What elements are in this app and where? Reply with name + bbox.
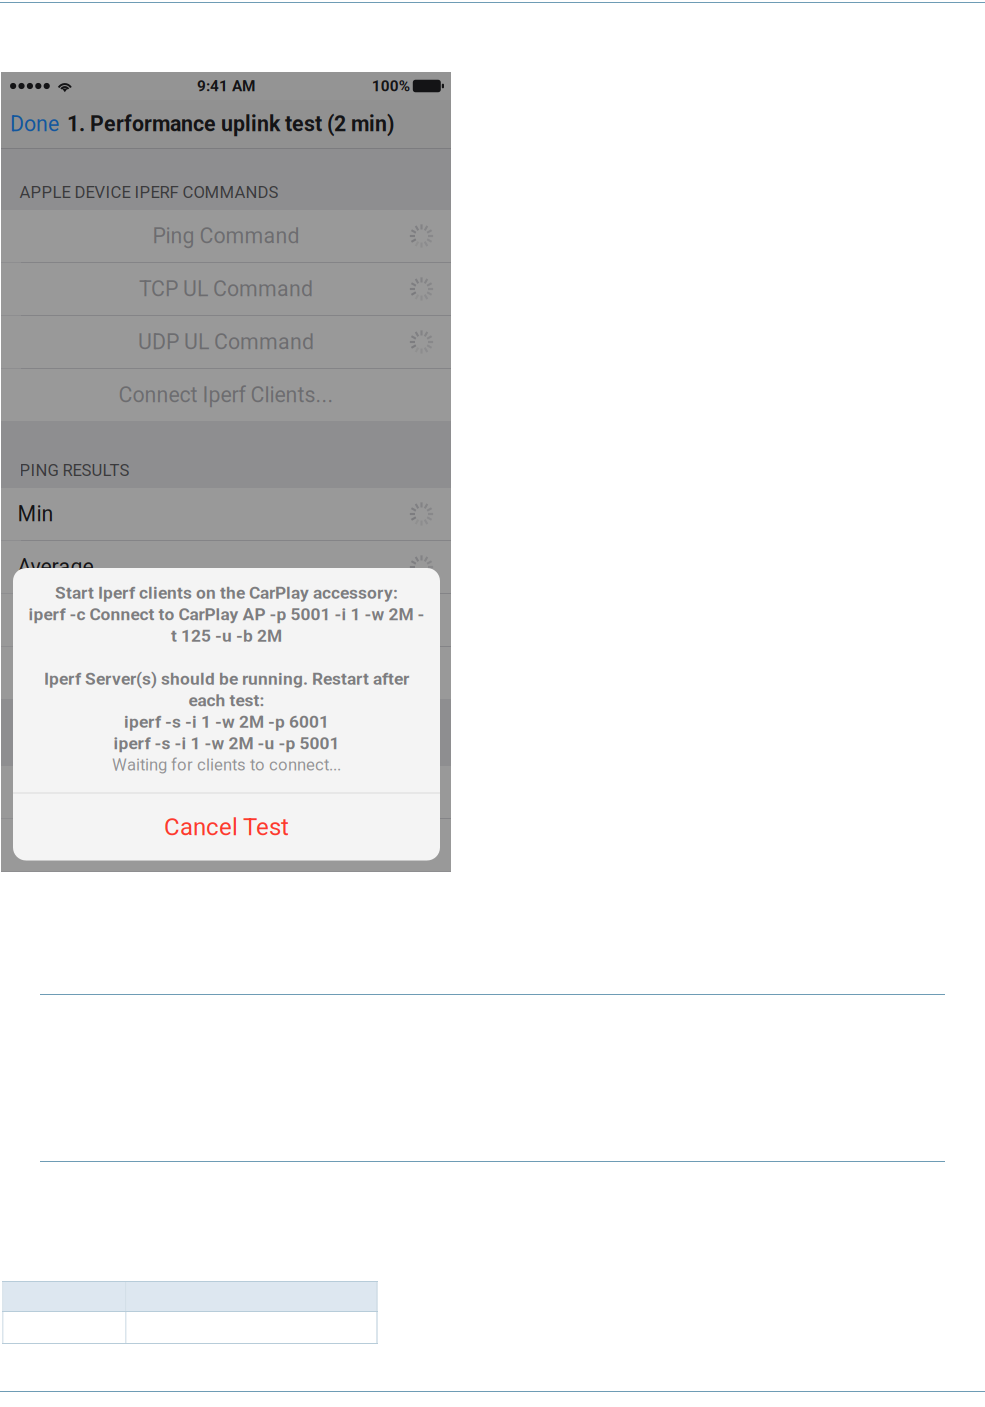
staticText: iperf -c Connect to CarPlay AP -p 5001 -… <box>28 604 424 624</box>
staticText: iperf -s -i 1 -w 2M -p 6001 <box>124 712 329 732</box>
staticText: each test: <box>188 690 264 710</box>
staticText: Max <box>17 607 59 632</box>
button[interactable]: Min <box>1 488 451 540</box>
staticText: TCP UL <box>17 779 86 804</box>
staticText: 9:41 AM <box>197 77 255 95</box>
button[interactable]: Cancel Test <box>13 793 440 860</box>
button[interactable]: Average <box>1 541 451 593</box>
staticText: 1. Performance uplink test (2 min) <box>67 111 394 136</box>
staticText: Done <box>10 111 59 136</box>
staticText: Min <box>17 501 53 526</box>
staticText: UDP UL Command <box>138 329 314 354</box>
button[interactable]: Max <box>1 594 451 646</box>
button[interactable]: Loss <box>1 647 451 699</box>
button[interactable]: Ping Command <box>1 210 451 262</box>
button[interactable]: TCP UL <box>1 766 451 818</box>
staticText: Iperf Server(s) should be running. Resta… <box>44 669 409 689</box>
staticText: Connect Iperf Clients... <box>118 382 333 407</box>
staticText: APPLE DEVICE IPERF COMMANDS <box>19 182 278 202</box>
staticText: TCP UL Command <box>139 276 313 301</box>
staticText: Waiting for clients to connect... <box>112 755 341 774</box>
staticText: Cancel Test <box>164 813 289 841</box>
staticText: Loss <box>17 660 62 685</box>
staticText: Ping Command <box>152 223 299 248</box>
button[interactable]: Done <box>1 99 67 148</box>
staticText: Average <box>17 554 93 579</box>
button[interactable]: UDP UL <box>1 819 451 871</box>
button[interactable]: Connect Iperf Clients... <box>1 369 451 421</box>
staticText: 100% <box>372 77 410 95</box>
staticText: iperf -s -i 1 -w 2M -u -p 5001 <box>113 733 339 753</box>
staticText: t 125 -u -b 2M <box>171 626 282 646</box>
staticText: THROUGHPUT RESULTS <box>19 738 199 758</box>
staticText: PING RESULTS <box>19 460 129 480</box>
button[interactable]: TCP UL Command <box>1 263 451 315</box>
staticText: Start Iperf clients on the CarPlay acces… <box>55 583 398 603</box>
button[interactable]: UDP UL Command <box>1 316 451 368</box>
